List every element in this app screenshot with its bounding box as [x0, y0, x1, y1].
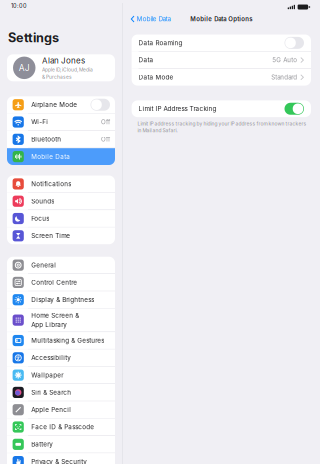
button[interactable]: Airplane Mode [7, 96, 115, 113]
staticText: Off [101, 118, 110, 126]
staticText: 10:00 [11, 3, 27, 9]
button[interactable]: Display & Brightness [7, 291, 115, 308]
button[interactable]: Siri & Search [7, 384, 115, 401]
staticText: Airplane Mode [31, 101, 77, 108]
staticText: Bluetooth [31, 135, 61, 143]
button[interactable]: Apple Pencil [7, 401, 115, 418]
staticText: Sounds [31, 197, 54, 205]
staticText: 5G Auto [272, 56, 297, 64]
button[interactable]: Home Screen & [7, 309, 115, 332]
staticText: & Purchases [42, 74, 72, 80]
staticText: Display & Brightness [31, 296, 94, 303]
staticText: Notifications [31, 180, 71, 188]
staticText: Screen Time [31, 232, 70, 240]
button[interactable]: Privacy & Security [7, 453, 115, 464]
staticText: General [31, 261, 56, 269]
staticText: Privacy & Security [31, 458, 87, 464]
button[interactable]: Battery [7, 436, 115, 453]
staticText: Mobile Data Options [190, 15, 252, 23]
staticText: Standard [271, 74, 297, 81]
button[interactable]: Mobile Data [123, 12, 170, 26]
staticText: Home Screen & [31, 312, 79, 319]
staticText: Data Mode [139, 73, 174, 81]
staticText: Battery [31, 440, 53, 448]
button[interactable]: Wallpaper [7, 367, 115, 383]
staticText: Limit IP Address Tracking [139, 105, 217, 113]
button[interactable]: Focus [7, 210, 115, 227]
staticText: Accessibility [31, 354, 71, 362]
staticText: Control Centre [31, 279, 77, 286]
staticText: Siri & Search [31, 389, 71, 396]
staticText: Settings [8, 30, 59, 45]
staticText: in Mail and Safari. [138, 127, 178, 133]
button[interactable]: Control Centre [7, 274, 115, 291]
button[interactable]: Sounds [7, 193, 115, 210]
staticText: Apple ID, iCloud, Media [42, 67, 93, 73]
button[interactable]: Mobile Data [7, 148, 115, 165]
button[interactable]: Data [132, 52, 311, 68]
button[interactable]: AJ [7, 54, 115, 81]
staticText: Data [139, 56, 154, 64]
button[interactable]: Face ID & Passcode [7, 419, 115, 435]
staticText: Alan Jones [42, 56, 85, 65]
staticText: Data Roaming [139, 39, 183, 47]
staticText: Wallpaper [31, 371, 63, 379]
staticText: Mobile Data [31, 153, 70, 160]
staticText: Face ID & Passcode [31, 423, 94, 431]
staticText: Mobile Data [136, 15, 170, 23]
button[interactable]: Wi-Fi [7, 114, 115, 130]
staticText: AJ [19, 63, 30, 73]
staticText: Focus [31, 215, 49, 222]
staticText: App Library [31, 321, 67, 328]
button[interactable]: Data Roaming [132, 34, 311, 51]
button[interactable]: Bluetooth [7, 131, 115, 148]
button[interactable]: Multitasking & Gestures [7, 332, 115, 349]
button[interactable]: Data Mode [132, 69, 311, 86]
staticText: Apple Pencil [31, 406, 71, 413]
button[interactable]: General [7, 257, 115, 273]
staticText: Limit IP address tracking by hiding your… [138, 121, 307, 127]
button[interactable]: Notifications [7, 175, 115, 192]
button[interactable]: Accessibility [7, 349, 115, 366]
staticText: Wi-Fi [31, 118, 48, 126]
staticText: Multitasking & Gestures [31, 337, 104, 344]
button[interactable]: Limit IP Address Tracking [132, 100, 311, 117]
button[interactable]: Screen Time [7, 227, 115, 244]
staticText: Off [101, 136, 110, 143]
